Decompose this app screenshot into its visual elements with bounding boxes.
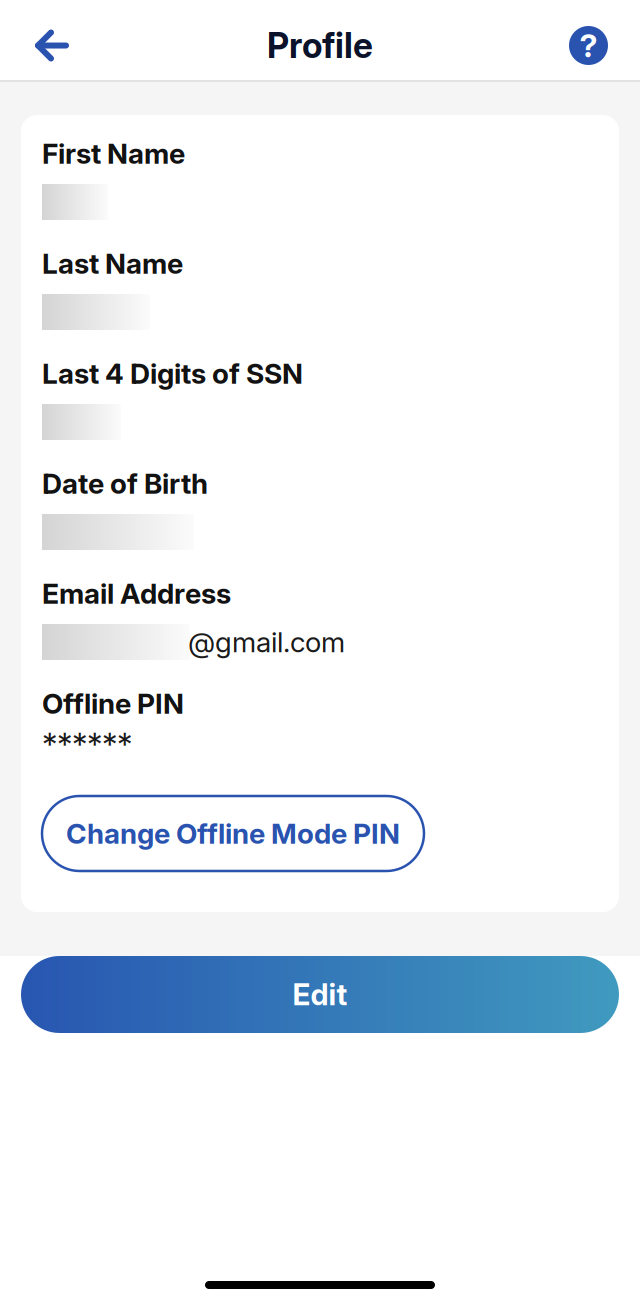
button[interactable]: Edit: [21, 956, 619, 1033]
staticText: ?: [579, 26, 597, 65]
staticText: Edit: [292, 977, 347, 1012]
button[interactable]: Back: [0, 9, 104, 82]
staticText: Offline PIN: [42, 687, 184, 720]
staticText: Last 4 Digits of SSN: [42, 357, 303, 390]
staticText: Email Address: [42, 577, 231, 610]
staticText: Change Offline Mode PIN: [66, 817, 400, 850]
staticText: Profile: [267, 24, 373, 66]
staticText: Date of Birth: [42, 467, 208, 500]
button[interactable]: Change Offline Mode PIN: [42, 796, 424, 871]
button[interactable]: Help: [536, 9, 640, 82]
staticText: @gmail.com: [188, 625, 345, 659]
staticText: First Name: [42, 137, 185, 170]
staticText: ******: [42, 725, 132, 763]
staticText: Last Name: [42, 247, 183, 280]
